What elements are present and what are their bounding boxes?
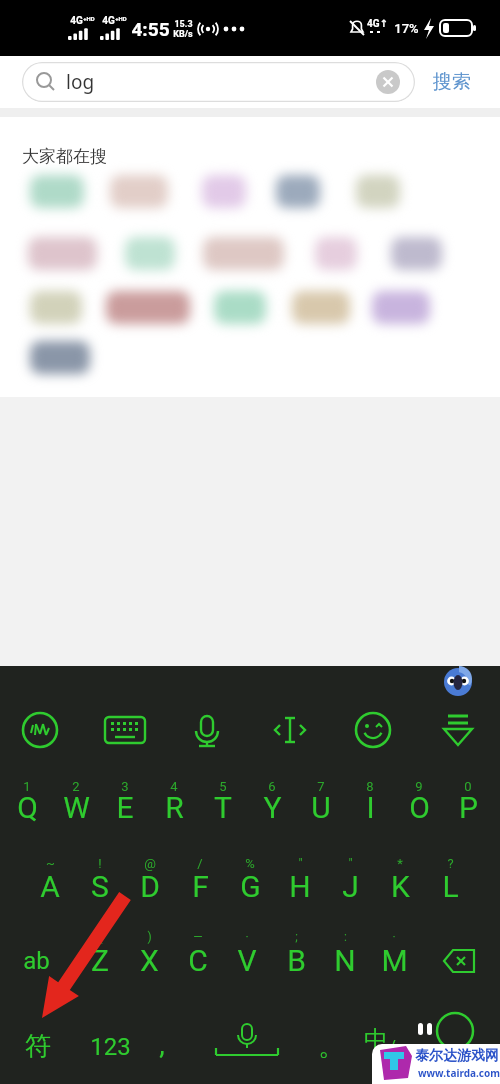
- staticText: O: [409, 790, 430, 825]
- staticText: C: [188, 943, 208, 978]
- staticText: ·: [245, 930, 249, 944]
- button[interactable]: N: [323, 940, 367, 980]
- staticText: 7: [317, 779, 325, 794]
- staticText: Q: [17, 790, 38, 825]
- button[interactable]: C: [176, 940, 220, 980]
- staticText: *: [397, 856, 403, 871]
- button[interactable]: W: [53, 787, 99, 827]
- staticText: 4G: [70, 15, 83, 27]
- staticText: 6: [268, 779, 276, 794]
- staticText: 9: [415, 779, 423, 794]
- staticText: N: [334, 943, 356, 978]
- staticText: log: [66, 69, 95, 95]
- button[interactable]: I: [347, 787, 393, 827]
- staticText: 搜索: [433, 70, 471, 94]
- staticText: G: [240, 869, 261, 904]
- staticText: 123: [90, 1033, 131, 1061]
- staticText: 泰尔达游戏网: [415, 1047, 499, 1065]
- staticText: J: [342, 869, 359, 904]
- button[interactable]: O: [396, 787, 442, 827]
- staticText: W: [63, 790, 90, 825]
- button[interactable]: Y: [249, 787, 295, 827]
- button[interactable]: H: [277, 866, 323, 906]
- staticText: B: [287, 943, 306, 978]
- button[interactable]: P: [445, 787, 491, 827]
- button[interactable]: ab: [10, 942, 62, 980]
- button[interactable]: V: [225, 940, 269, 980]
- staticText: R: [165, 790, 184, 825]
- staticText: +HD: [83, 15, 95, 22]
- staticText: ": [298, 856, 303, 871]
- staticText: U: [311, 790, 331, 825]
- staticText: ): [147, 930, 152, 944]
- staticText: ~: [46, 856, 55, 871]
- button[interactable]: Z: [78, 940, 122, 980]
- button[interactable]: 。: [313, 1026, 349, 1066]
- staticText: 15.3: [174, 19, 193, 30]
- button[interactable]: L: [427, 866, 473, 906]
- button[interactable]: 泰尔达游戏网: [372, 1044, 500, 1084]
- staticText: 4: [170, 779, 178, 794]
- staticText: S: [91, 869, 109, 904]
- button[interactable]: Q: [4, 787, 50, 827]
- staticText: !: [98, 856, 102, 871]
- staticText: Y: [263, 790, 282, 825]
- staticText: ab: [23, 947, 50, 975]
- staticText: L: [442, 869, 459, 904]
- button[interactable]: J: [327, 866, 373, 906]
- staticText: F: [192, 869, 209, 904]
- staticText: E: [116, 790, 134, 825]
- button[interactable]: ,: [144, 1024, 180, 1064]
- button[interactable]: 中: [356, 1020, 396, 1060]
- staticText: /: [197, 856, 203, 871]
- button[interactable]: [212, 1022, 282, 1066]
- staticText: A: [40, 869, 60, 904]
- button[interactable]: U: [298, 787, 344, 827]
- staticText: V: [237, 943, 257, 978]
- staticText: 2: [72, 779, 80, 794]
- staticText: 8: [366, 779, 374, 794]
- button[interactable]: [434, 944, 480, 978]
- button[interactable]: D: [127, 866, 173, 906]
- button[interactable]: E: [102, 787, 148, 827]
- staticText: @: [144, 856, 156, 871]
- staticText: 中: [364, 1025, 388, 1055]
- button[interactable]: A: [27, 866, 73, 906]
- staticText: 3: [121, 779, 129, 794]
- staticText: ?: [447, 856, 454, 871]
- staticText: +HD: [115, 15, 127, 22]
- staticText: —: [193, 930, 203, 944]
- button[interactable]: 符: [12, 1025, 64, 1067]
- button[interactable]: 123: [80, 1027, 140, 1067]
- staticText: ·: [392, 930, 396, 944]
- staticText: ;: [295, 930, 298, 944]
- staticText: %: [245, 856, 255, 871]
- staticText: 1: [23, 779, 31, 794]
- staticText: D: [140, 869, 160, 904]
- button[interactable]: M: [372, 940, 416, 980]
- staticText: I: [366, 790, 375, 825]
- staticText: 5: [219, 779, 227, 794]
- button[interactable]: K: [377, 866, 423, 906]
- staticText: www.tairda.com: [418, 1066, 500, 1080]
- button[interactable]: 搜索: [417, 65, 487, 99]
- staticText: ,: [159, 1028, 165, 1061]
- button[interactable]: log: [22, 62, 415, 102]
- button[interactable]: T: [200, 787, 246, 827]
- staticText: ": [348, 856, 353, 871]
- button[interactable]: S: [77, 866, 123, 906]
- button[interactable]: F: [177, 866, 223, 906]
- staticText: :: [344, 930, 347, 944]
- staticText: 17%: [394, 21, 419, 36]
- staticText: 。: [318, 1030, 344, 1063]
- button[interactable]: R: [151, 787, 197, 827]
- staticText: 大家都在搜: [22, 146, 107, 167]
- staticText: (: [98, 930, 103, 944]
- staticText: M: [381, 943, 408, 978]
- staticText: 4G: [102, 15, 115, 27]
- button[interactable]: X: [127, 940, 171, 980]
- button[interactable]: G: [227, 866, 273, 906]
- staticText: H: [289, 869, 311, 904]
- staticText: X: [140, 943, 159, 978]
- button[interactable]: B: [274, 940, 318, 980]
